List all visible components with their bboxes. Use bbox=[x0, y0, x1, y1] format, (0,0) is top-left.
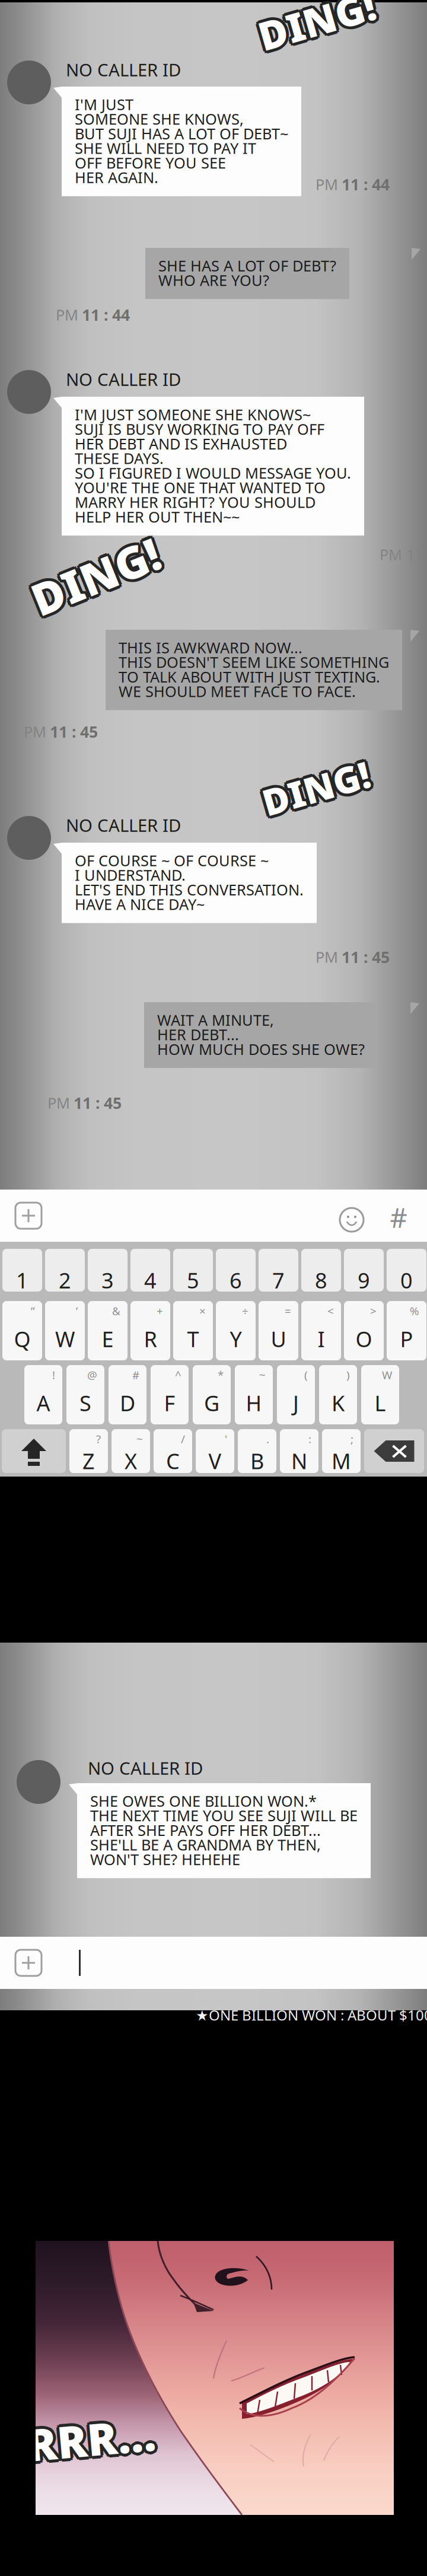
staticText: ( bbox=[304, 1367, 308, 1382]
staticText: L bbox=[375, 1389, 386, 1417]
staticText: DING! bbox=[264, 764, 374, 812]
button[interactable]: ~ bbox=[235, 1365, 273, 1424]
staticText: PM 11 bbox=[380, 544, 423, 564]
button[interactable]: ' bbox=[196, 1429, 234, 1473]
staticText: Z bbox=[82, 1447, 95, 1475]
staticText: DING! bbox=[258, 764, 368, 812]
staticText: > bbox=[370, 1303, 377, 1318]
button[interactable]: Shift bbox=[2, 1429, 66, 1473]
staticText: DING! bbox=[261, 761, 371, 809]
staticText: 11 : 44 bbox=[82, 304, 130, 325]
staticText: 11 : 45 bbox=[50, 721, 98, 742]
staticText: THIS DOESN'T SEEM LIKE SOMETHING bbox=[119, 652, 389, 672]
staticText: ; bbox=[350, 1432, 353, 1446]
button[interactable]: Hashtag bbox=[385, 1204, 412, 1231]
button[interactable]: ) bbox=[319, 1365, 357, 1424]
staticText: PM bbox=[24, 722, 46, 742]
button[interactable]: W bbox=[361, 1365, 399, 1424]
staticText: WON'T SHE? HEHEHE bbox=[90, 1849, 240, 1869]
button[interactable]: 8 bbox=[301, 1249, 341, 1292]
button[interactable]: ” bbox=[2, 1301, 42, 1360]
button[interactable]: / bbox=[154, 1429, 192, 1473]
button[interactable]: ~ bbox=[111, 1429, 150, 1473]
staticText: . bbox=[266, 1432, 269, 1446]
staticText: N bbox=[291, 1447, 307, 1475]
staticText: H bbox=[246, 1389, 262, 1417]
staticText: PM bbox=[316, 174, 338, 194]
button[interactable]: # bbox=[109, 1365, 146, 1424]
button[interactable]: 1 bbox=[2, 1249, 42, 1292]
button[interactable]: . bbox=[238, 1429, 276, 1473]
staticText: NO CALLER ID bbox=[66, 58, 181, 81]
button[interactable]: Emoji bbox=[340, 1208, 364, 1232]
staticText: DING! bbox=[31, 549, 165, 608]
button[interactable]: @ bbox=[66, 1365, 104, 1424]
staticText: ERRR… bbox=[4, 2413, 158, 2471]
button[interactable]: + bbox=[130, 1301, 170, 1360]
button[interactable]: Delete bbox=[364, 1429, 424, 1473]
staticText: ' bbox=[225, 1432, 227, 1446]
staticText: WAIT A MINUTE, bbox=[157, 1010, 274, 1030]
staticText: / bbox=[181, 1432, 185, 1446]
button[interactable]: ( bbox=[277, 1365, 315, 1424]
staticText: DING! bbox=[259, 0, 379, 44]
staticText: & bbox=[112, 1303, 120, 1318]
button[interactable]: 2 bbox=[45, 1249, 85, 1292]
staticText: HER AGAIN. bbox=[75, 167, 158, 187]
button[interactable]: = bbox=[259, 1301, 298, 1360]
button[interactable]: ! bbox=[24, 1365, 62, 1424]
staticText: WE SHOULD MEET FACE TO FACE. bbox=[119, 681, 356, 701]
staticText: 7 bbox=[272, 1266, 285, 1294]
staticText: HER DEBT AND IS EXHAUSTED bbox=[75, 434, 287, 454]
staticText: SHE HAS A LOT OF DEBT? bbox=[158, 256, 336, 276]
button[interactable]: 9 bbox=[344, 1249, 384, 1292]
button[interactable]: 5 bbox=[173, 1249, 213, 1292]
button[interactable]: 0 bbox=[387, 1249, 426, 1292]
staticText: DING! bbox=[28, 544, 163, 603]
staticText: DING! bbox=[26, 547, 160, 606]
button[interactable]: ÷ bbox=[216, 1301, 256, 1360]
staticText: T bbox=[187, 1325, 199, 1353]
staticText: NO CALLER ID bbox=[66, 814, 181, 837]
staticText: ERRR… bbox=[4, 2408, 158, 2467]
staticText: SUJI IS BUSY WORKING TO PAY OFF bbox=[75, 419, 324, 439]
staticText: D bbox=[120, 1389, 135, 1417]
button[interactable]: & bbox=[88, 1301, 128, 1360]
staticText: ERRR… bbox=[0, 2408, 154, 2467]
button[interactable]: 3 bbox=[88, 1249, 128, 1292]
staticText: OFF BEFORE YOU SEE bbox=[75, 153, 226, 173]
button[interactable]: ; bbox=[322, 1429, 361, 1473]
button[interactable]: > bbox=[344, 1301, 384, 1360]
staticText: PM bbox=[47, 1093, 70, 1113]
staticText: I UNDERSTAND. bbox=[75, 865, 186, 885]
staticText: PM bbox=[316, 947, 338, 967]
staticText: ERRR… bbox=[2, 2414, 156, 2472]
button[interactable]: Attach bbox=[15, 1203, 42, 1229]
staticText: S bbox=[79, 1389, 91, 1417]
staticText: ERRR… bbox=[0, 2411, 153, 2469]
staticText: AFTER SHE PAYS OFF HER DEBT... bbox=[90, 1820, 321, 1840]
button[interactable]: * bbox=[193, 1365, 231, 1424]
staticText: P bbox=[400, 1325, 413, 1353]
button[interactable]: 4 bbox=[130, 1249, 170, 1292]
staticText: E bbox=[102, 1325, 114, 1353]
staticText: G bbox=[204, 1389, 219, 1417]
staticText: 11 : 45 bbox=[74, 1092, 122, 1113]
button[interactable]: % bbox=[387, 1301, 426, 1360]
staticText: 11 : 44 bbox=[342, 174, 390, 195]
button[interactable]: 6 bbox=[216, 1249, 256, 1292]
staticText: 3 bbox=[101, 1266, 114, 1294]
button[interactable]: 7 bbox=[259, 1249, 298, 1292]
button[interactable]: : bbox=[280, 1429, 318, 1473]
staticText: DING! bbox=[257, 0, 377, 47]
button[interactable]: ? bbox=[69, 1429, 108, 1473]
staticText: W bbox=[382, 1367, 392, 1382]
staticText: R bbox=[144, 1325, 157, 1353]
button[interactable]: ^ bbox=[151, 1365, 189, 1424]
button[interactable]: ’ bbox=[45, 1301, 85, 1360]
staticText: DING! bbox=[254, 0, 374, 47]
button[interactable]: < bbox=[301, 1301, 341, 1360]
button[interactable]: Attach bbox=[15, 1950, 42, 1976]
button[interactable]: × bbox=[173, 1301, 213, 1360]
staticText: DING! bbox=[31, 547, 166, 606]
